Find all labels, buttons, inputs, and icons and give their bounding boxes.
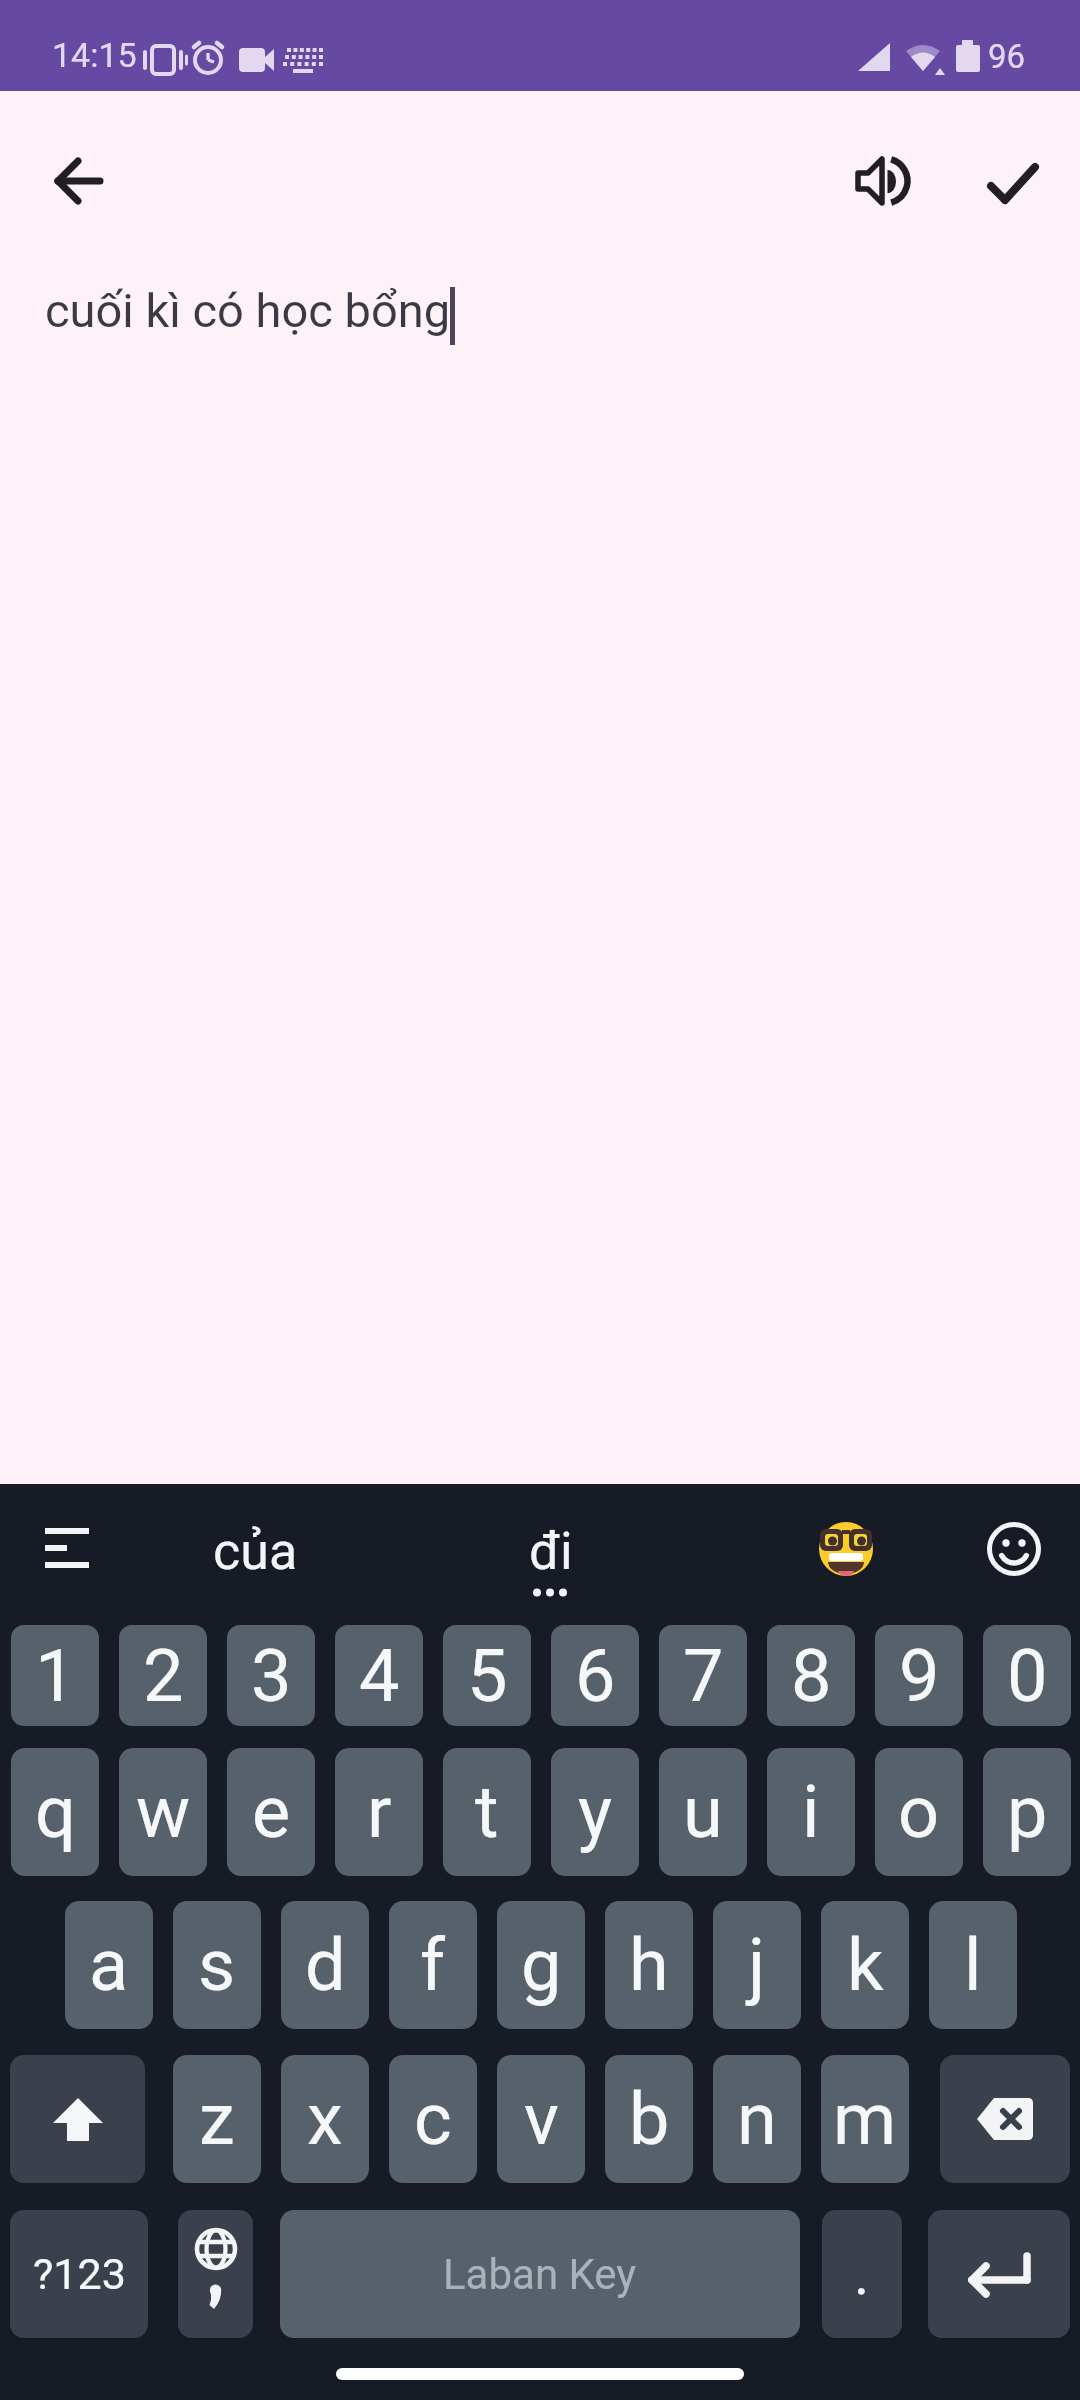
staticText: 5: [467, 1634, 508, 1718]
staticText: 6: [575, 1634, 616, 1718]
button[interactable]: 3: [227, 1625, 315, 1726]
staticText: n: [737, 2077, 777, 2161]
button[interactable]: [928, 2210, 1070, 2338]
staticText: f: [420, 1923, 446, 2007]
button[interactable]: của: [155, 1513, 355, 1589]
staticText: b: [629, 2077, 670, 2161]
staticText: 0: [1007, 1634, 1048, 1718]
staticText: d: [305, 1923, 346, 2007]
button[interactable]: s: [173, 1901, 261, 2029]
staticText: đi: [529, 1521, 573, 1582]
staticText: j: [748, 1923, 766, 2007]
staticText: q: [35, 1770, 76, 1854]
staticText: m: [833, 2077, 897, 2161]
staticText: g: [521, 1923, 562, 2007]
button[interactable]: c: [389, 2055, 477, 2183]
staticText: y: [578, 1770, 613, 1854]
button[interactable]: k: [821, 1901, 909, 2029]
button[interactable]: j: [713, 1901, 801, 2029]
button[interactable]: y: [551, 1748, 639, 1876]
button[interactable]: [35, 137, 123, 225]
staticText: s: [198, 1923, 236, 2007]
staticText: 8: [791, 1634, 832, 1718]
button[interactable]: h: [605, 1901, 693, 2029]
button[interactable]: l: [929, 1901, 1017, 2029]
staticText: 3: [251, 1634, 292, 1718]
button[interactable]: n: [713, 2055, 801, 2183]
staticText: u: [683, 1770, 723, 1854]
button[interactable]: [940, 2055, 1070, 2183]
staticText: t: [475, 1770, 499, 1854]
staticText: p: [1007, 1770, 1048, 1854]
staticText: .: [854, 2240, 870, 2308]
button[interactable]: r: [335, 1748, 423, 1876]
button[interactable]: v: [497, 2055, 585, 2183]
button[interactable]: ?123: [10, 2210, 148, 2338]
button[interactable]: w: [119, 1748, 207, 1876]
staticText: 96: [988, 37, 1026, 76]
staticText: 14:15: [52, 35, 137, 75]
button[interactable]: 2: [119, 1625, 207, 1726]
staticText: cuối kì có học bổng: [45, 283, 451, 338]
button[interactable]: q: [11, 1748, 99, 1876]
button[interactable]: 8: [767, 1625, 855, 1726]
staticText: 9: [899, 1634, 940, 1718]
staticText: h: [629, 1923, 669, 2007]
button[interactable]: 6: [551, 1625, 639, 1726]
button[interactable]: m: [821, 2055, 909, 2183]
button[interactable]: .: [822, 2210, 902, 2338]
button[interactable]: 9: [875, 1625, 963, 1726]
button[interactable]: u: [659, 1748, 747, 1876]
staticText: e: [252, 1770, 291, 1854]
staticText: z: [199, 2077, 235, 2161]
button[interactable]: [969, 140, 1057, 228]
staticText: 2: [143, 1634, 184, 1718]
button[interactable]: [178, 2210, 253, 2338]
button[interactable]: f: [389, 1901, 477, 2029]
staticText: l: [964, 1923, 982, 2007]
staticText: 7: [683, 1634, 724, 1718]
button[interactable]: e: [227, 1748, 315, 1876]
staticText: r: [367, 1770, 392, 1854]
button[interactable]: i: [767, 1748, 855, 1876]
button[interactable]: g: [497, 1901, 585, 2029]
staticText: ?123: [33, 2249, 126, 2299]
button[interactable]: 1: [11, 1625, 99, 1726]
button[interactable]: t: [443, 1748, 531, 1876]
button[interactable]: 5: [443, 1625, 531, 1726]
button[interactable]: a: [65, 1901, 153, 2029]
staticText: a: [89, 1923, 129, 2007]
staticText: của: [213, 1521, 298, 1582]
staticText: w: [136, 1770, 191, 1854]
staticText: v: [524, 2077, 559, 2161]
button[interactable]: z: [173, 2055, 261, 2183]
button[interactable]: đi: [451, 1513, 651, 1589]
button[interactable]: [810, 1513, 882, 1585]
button[interactable]: [24, 1510, 110, 1586]
staticText: c: [414, 2077, 452, 2161]
button[interactable]: 7: [659, 1625, 747, 1726]
button[interactable]: 4: [335, 1625, 423, 1726]
button[interactable]: [838, 137, 926, 225]
staticText: Laban Key: [443, 2250, 637, 2299]
button[interactable]: b: [605, 2055, 693, 2183]
staticText: x: [307, 2077, 343, 2161]
button[interactable]: x: [281, 2055, 369, 2183]
button[interactable]: [978, 1513, 1050, 1585]
staticText: k: [847, 1923, 884, 2007]
button[interactable]: o: [875, 1748, 963, 1876]
button[interactable]: Laban Key: [280, 2210, 800, 2338]
staticText: 4: [359, 1634, 400, 1718]
button[interactable]: [10, 2055, 145, 2183]
button[interactable]: 0: [983, 1625, 1071, 1726]
staticText: o: [898, 1770, 940, 1854]
staticText: 1: [35, 1634, 76, 1718]
button[interactable]: d: [281, 1901, 369, 2029]
staticText: i: [802, 1770, 820, 1854]
button[interactable]: p: [983, 1748, 1071, 1876]
